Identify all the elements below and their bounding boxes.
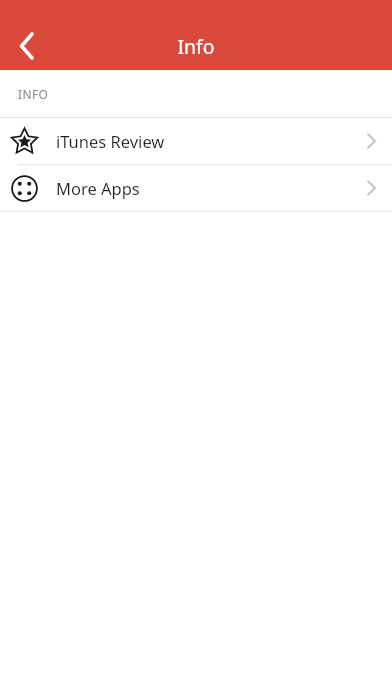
staticText: INFO (18, 86, 49, 102)
staticText: More Apps (56, 177, 140, 199)
button[interactable]: More Apps (0, 165, 392, 211)
button[interactable]: iTunes Review (0, 118, 392, 164)
staticText: Info (177, 33, 215, 60)
button[interactable]: Back (0, 22, 54, 70)
staticText: iTunes Review (56, 130, 165, 152)
